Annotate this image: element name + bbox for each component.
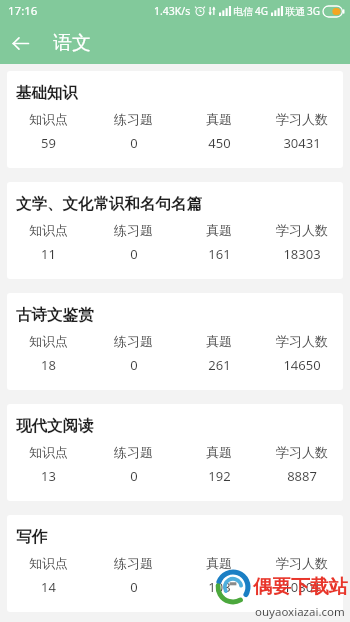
staticText: 偶要下载站 bbox=[253, 575, 348, 599]
staticText: 知识点 bbox=[29, 222, 68, 238]
button[interactable]: 基础知识 bbox=[7, 71, 343, 168]
staticText: 学习人数 bbox=[276, 111, 328, 127]
staticText: 联通 bbox=[285, 5, 305, 18]
staticText: 练习题 bbox=[114, 222, 153, 238]
staticText: 1.43K/s bbox=[154, 4, 191, 18]
staticText: 161 bbox=[208, 245, 231, 263]
staticText: 18303 bbox=[283, 245, 321, 263]
staticText: 古诗文鉴赏 bbox=[16, 305, 94, 325]
staticText: 练习题 bbox=[114, 333, 153, 349]
button[interactable]: 古诗文鉴赏 bbox=[7, 293, 343, 390]
staticText: 103 bbox=[208, 578, 231, 596]
staticText: ouyaoxiazai.com bbox=[255, 604, 345, 620]
staticText: 11 bbox=[41, 245, 56, 263]
staticText: 0 bbox=[130, 245, 138, 263]
staticText: 8887 bbox=[287, 467, 317, 485]
staticText: 真题 bbox=[206, 111, 232, 127]
staticText: 练习题 bbox=[114, 555, 153, 571]
button[interactable]: 写作 bbox=[7, 515, 343, 612]
staticText: 写作 bbox=[16, 527, 47, 547]
staticText: 真题 bbox=[206, 444, 232, 460]
staticText: 知识点 bbox=[29, 333, 68, 349]
staticText: 现代文阅读 bbox=[16, 416, 94, 436]
staticText: 450 bbox=[208, 134, 231, 152]
staticText: 知识点 bbox=[29, 555, 68, 571]
staticText: 基础知识 bbox=[16, 83, 78, 103]
staticText: 学习人数 bbox=[276, 222, 328, 238]
staticText: 真题 bbox=[206, 222, 232, 238]
button[interactable]: Back bbox=[0, 23, 40, 63]
staticText: 17:16 bbox=[8, 3, 38, 19]
staticText: 电信 bbox=[233, 5, 253, 18]
staticText: 0 bbox=[130, 134, 138, 152]
staticText: 59 bbox=[41, 134, 56, 152]
staticText: 13 bbox=[41, 467, 56, 485]
staticText: 练习题 bbox=[114, 444, 153, 460]
staticText: 语文 bbox=[53, 31, 91, 55]
staticText: 真题 bbox=[206, 333, 232, 349]
staticText: 知识点 bbox=[29, 444, 68, 460]
staticText: 知识点 bbox=[29, 111, 68, 127]
staticText: 30431 bbox=[283, 134, 321, 152]
staticText: 练习题 bbox=[114, 111, 153, 127]
staticText: 0 bbox=[130, 578, 138, 596]
staticText: 学习人数 bbox=[276, 333, 328, 349]
staticText: 261 bbox=[208, 356, 231, 374]
staticText: 14650 bbox=[283, 356, 321, 374]
staticText: 18 bbox=[41, 356, 56, 374]
button[interactable]: 现代文阅读 bbox=[7, 404, 343, 501]
staticText: 0 bbox=[130, 356, 138, 374]
staticText: 真题 bbox=[206, 555, 232, 571]
staticText: 文学、文化常识和名句名篇 bbox=[16, 194, 202, 214]
staticText: 0 bbox=[130, 467, 138, 485]
staticText: 10301 bbox=[283, 578, 321, 596]
staticText: 3G bbox=[307, 4, 320, 18]
staticText: 学习人数 bbox=[276, 444, 328, 460]
staticText: 14 bbox=[41, 578, 56, 596]
button[interactable]: 文学、文化常识和名句名篇 bbox=[7, 182, 343, 279]
staticText: 学习人数 bbox=[276, 555, 328, 571]
staticText: 192 bbox=[208, 467, 231, 485]
staticText: 4G bbox=[255, 4, 268, 18]
